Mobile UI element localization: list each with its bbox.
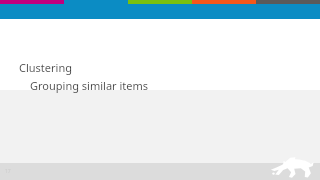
button[interactable]: Clustering: [19, 60, 138, 93]
staticText: Clustering: [19, 60, 72, 75]
staticText: Grouping similar items: [30, 78, 149, 93]
button[interactable]: Company logo: [270, 156, 314, 178]
staticText: 17: [5, 168, 11, 175]
